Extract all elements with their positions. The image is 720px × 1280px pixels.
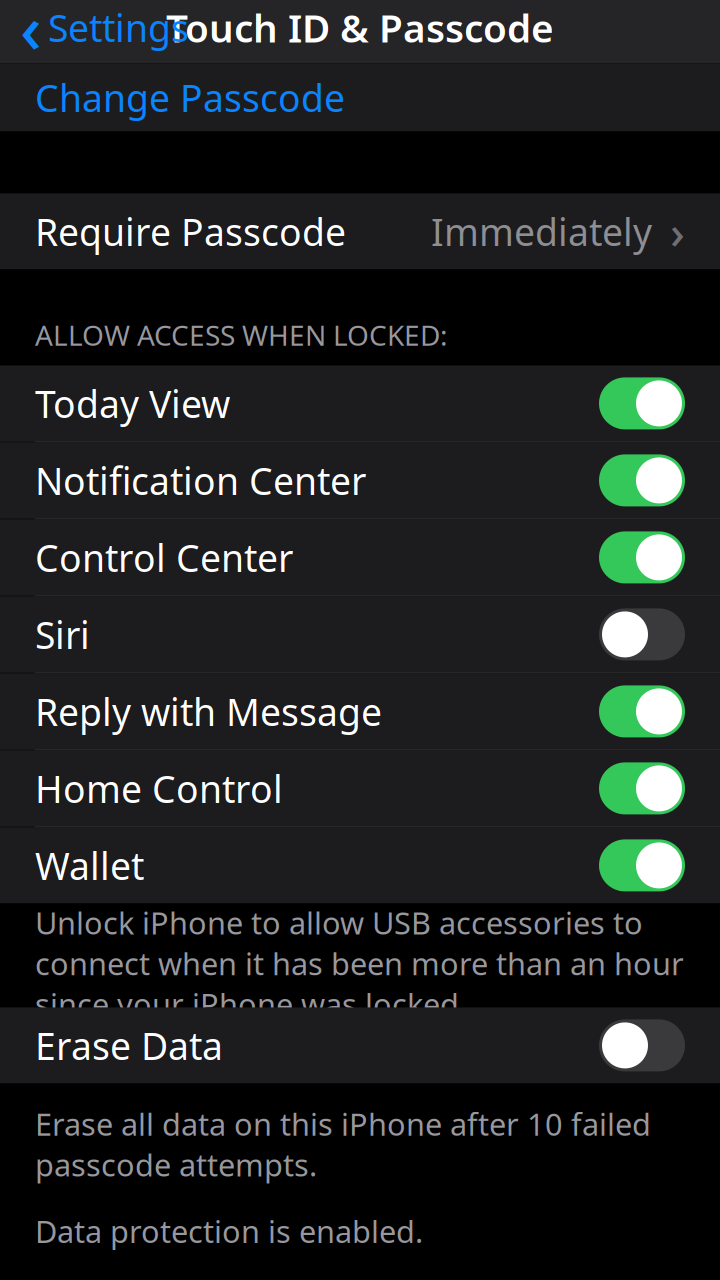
button[interactable]: Wallet bbox=[0, 827, 720, 903]
staticText: Reply with Message bbox=[35, 687, 382, 736]
button[interactable]: Siri bbox=[0, 596, 720, 672]
staticText: Siri bbox=[35, 610, 90, 659]
staticText: Wallet bbox=[35, 841, 144, 890]
button[interactable]: Change Passcode bbox=[0, 63, 720, 131]
staticText: Data protection is enabled. bbox=[35, 1211, 423, 1252]
staticText: ALLOW ACCESS WHEN LOCKED: bbox=[35, 316, 448, 353]
button[interactable]: Notification Center bbox=[0, 442, 720, 518]
staticText: Touch ID & Passcode bbox=[166, 2, 554, 53]
button[interactable]: Control Center bbox=[0, 519, 720, 595]
staticText: Require Passcode bbox=[35, 207, 346, 256]
staticText: Control Center bbox=[35, 533, 293, 582]
staticText: Immediately bbox=[431, 207, 652, 256]
staticText: Change Passcode bbox=[35, 73, 345, 122]
staticText: Home Control bbox=[35, 764, 283, 813]
staticText: ‹ bbox=[20, 0, 42, 72]
staticText: Settings bbox=[48, 3, 189, 52]
staticText: Erase Data bbox=[35, 1021, 223, 1070]
button[interactable]: Home Control bbox=[0, 750, 720, 826]
staticText: Notification Center bbox=[35, 456, 366, 505]
staticText: Unlock iPhone to allow USB accessories t… bbox=[35, 902, 684, 1024]
button[interactable]: ‹ bbox=[0, 0, 199, 63]
staticText: › bbox=[670, 201, 685, 261]
button[interactable]: Erase Data bbox=[0, 1007, 720, 1083]
staticText: Erase all data on this iPhone after 10 f… bbox=[35, 1103, 651, 1185]
staticText: Today View bbox=[35, 379, 230, 428]
button[interactable]: Require Passcode bbox=[0, 193, 720, 269]
button[interactable]: Today View bbox=[0, 365, 720, 441]
button[interactable]: Reply with Message bbox=[0, 673, 720, 749]
